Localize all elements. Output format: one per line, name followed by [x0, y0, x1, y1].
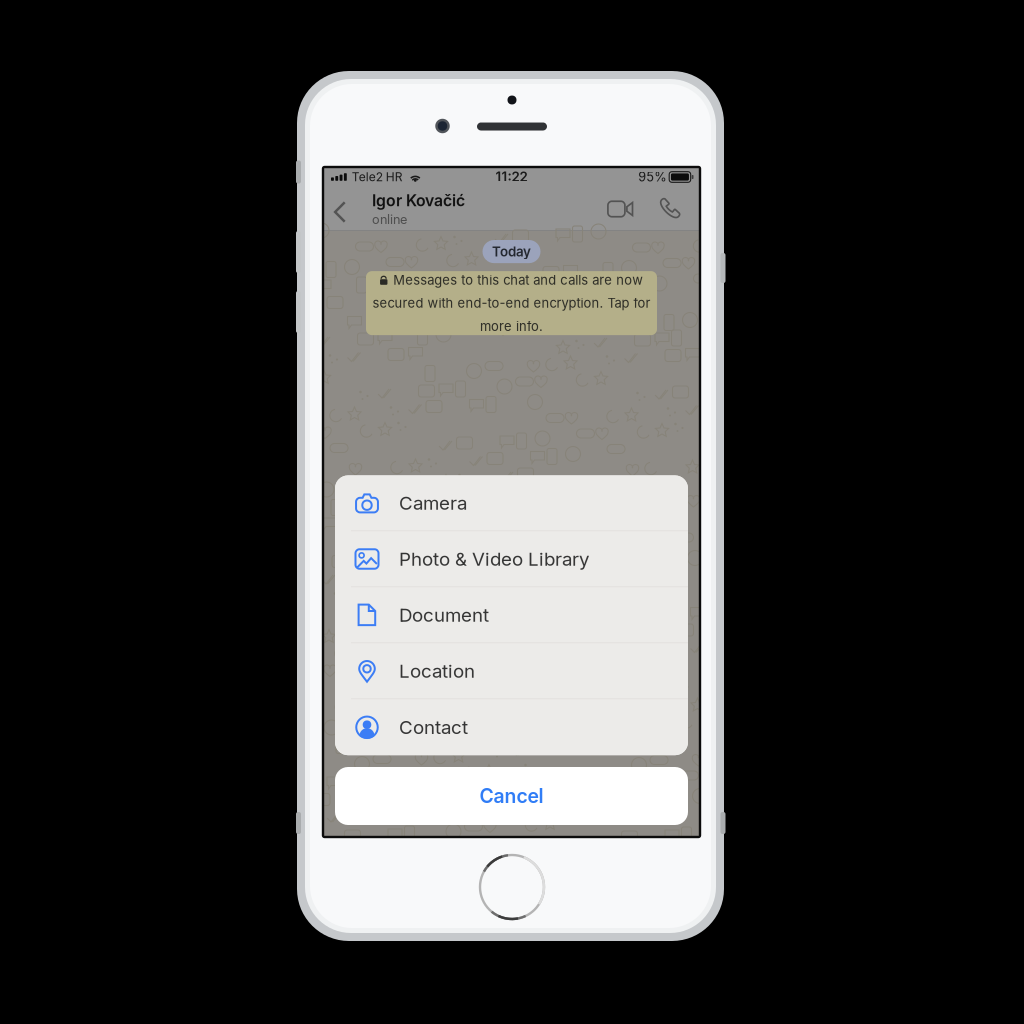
button[interactable]: Location — [335, 643, 688, 699]
button[interactable]: Photo & Video Library — [335, 531, 688, 587]
staticText: Photo & Video Library — [399, 548, 589, 570]
button[interactable]: Camera — [335, 475, 688, 531]
button[interactable]: Back — [327, 187, 353, 231]
staticText: 95% — [638, 169, 666, 185]
staticText: online — [372, 212, 407, 227]
staticText: Cancel — [479, 784, 543, 808]
staticText: Messages to this chat and calls are now — [393, 272, 643, 288]
staticText: Contact — [399, 716, 468, 739]
button[interactable]: Video call — [595, 187, 646, 231]
staticText: Camera — [399, 492, 467, 514]
staticText: Tele2 HR — [352, 170, 403, 184]
button[interactable]: Document — [335, 587, 688, 643]
button[interactable]: Contact — [335, 699, 688, 755]
button[interactable]: Cancel — [335, 767, 688, 825]
staticText: Today — [492, 243, 531, 260]
staticText: Igor Kovačić — [372, 191, 465, 210]
staticText: secured with end-to-end encryption. Tap … — [372, 295, 650, 311]
staticText: Location — [399, 660, 475, 682]
staticText: 11:22 — [495, 168, 527, 185]
staticText: more info. — [480, 318, 543, 334]
button[interactable]: Igor Kovačić — [353, 187, 465, 231]
button[interactable]: Voice call — [646, 187, 693, 231]
staticText: Document — [399, 604, 489, 626]
